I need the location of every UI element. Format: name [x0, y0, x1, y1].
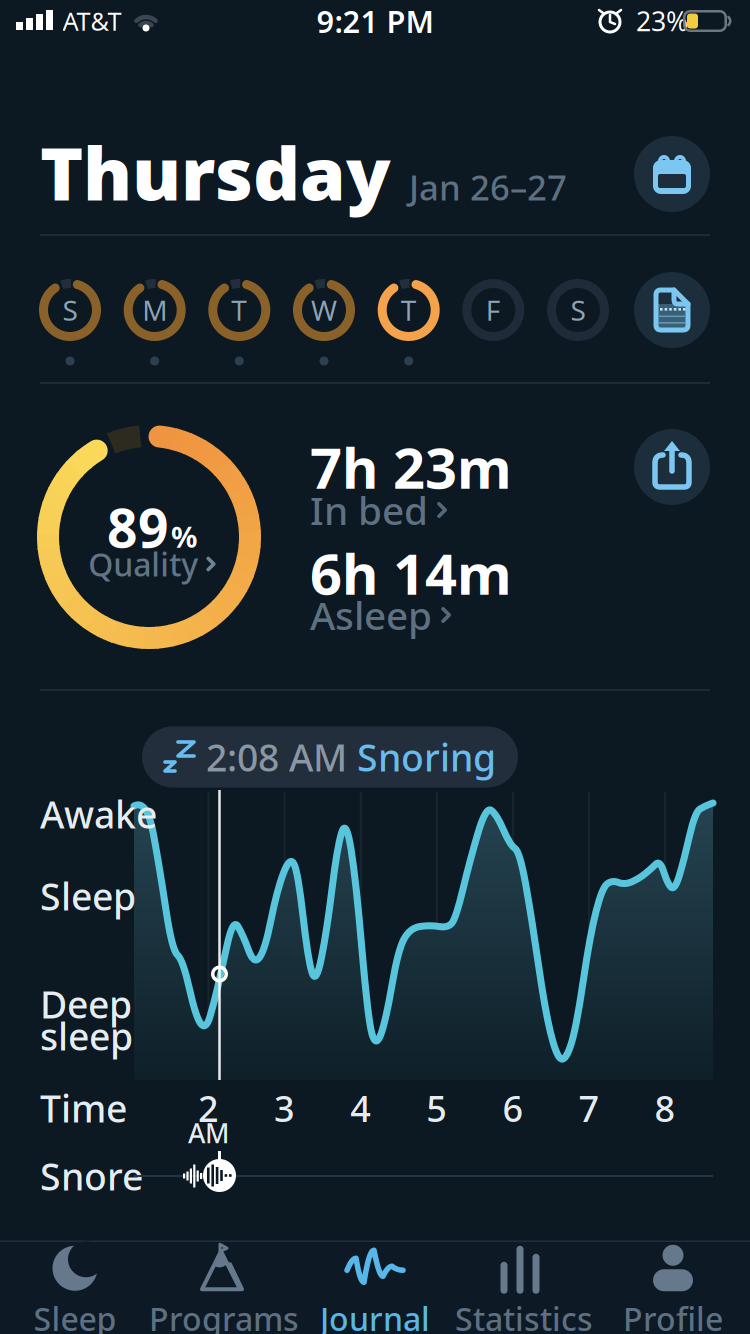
button[interactable]: W [291, 277, 357, 343]
staticText: 9:21 PM [316, 1, 433, 41]
staticText: Programs [149, 1297, 299, 1334]
staticText: S [62, 291, 77, 329]
button[interactable]: 2:08 AM [142, 726, 518, 787]
staticText: 3 [274, 1084, 295, 1132]
staticText: Snoring [357, 732, 496, 782]
button[interactable] [634, 429, 710, 505]
staticText: sleep [40, 1011, 133, 1061]
staticText: 7 [578, 1084, 599, 1132]
staticText: Sleep [33, 1297, 116, 1334]
staticText: W [311, 291, 337, 329]
staticText: 2:08 AM [206, 732, 347, 782]
button[interactable]: 89 [57, 483, 247, 603]
staticText: Awake [40, 789, 157, 839]
staticText: 2 [198, 1084, 219, 1132]
staticText: Sleep [40, 871, 136, 921]
staticText: 8 [655, 1084, 676, 1132]
button[interactable] [203, 1159, 236, 1192]
staticText: S [570, 291, 585, 329]
button[interactable]: M [122, 277, 188, 343]
button[interactable]: Programs [144, 1247, 304, 1334]
staticText: 23% [636, 3, 688, 39]
button[interactable]: S [37, 277, 103, 343]
button[interactable]: F [460, 277, 526, 343]
staticText: Profile [623, 1297, 723, 1334]
staticText: T [401, 291, 417, 329]
staticText: 7h 23m [310, 430, 512, 504]
button[interactable]: T [206, 277, 272, 343]
staticText: 4 [350, 1084, 371, 1132]
button[interactable]: 7h 23m [310, 433, 640, 543]
staticText: Deep [40, 979, 132, 1029]
staticText: M [142, 291, 167, 329]
button[interactable]: S [545, 277, 611, 343]
staticText: Quality [88, 543, 198, 585]
staticText: 89 [107, 492, 169, 562]
button[interactable]: Sleep [0, 1247, 155, 1334]
staticText: Statistics [455, 1297, 593, 1334]
staticText: F [486, 291, 501, 329]
staticText: Time [40, 1083, 127, 1133]
button[interactable]: Profile [593, 1247, 750, 1334]
staticText: 5 [426, 1084, 447, 1132]
button[interactable]: Statistics [444, 1247, 604, 1334]
staticText: Thursday [40, 123, 391, 221]
button[interactable]: Journal [295, 1247, 455, 1334]
staticText: Asleep [310, 589, 432, 641]
staticText: Journal [320, 1297, 430, 1334]
staticText: AT&T [62, 4, 121, 38]
staticText: In bed [310, 484, 428, 536]
staticText: 6h 14m [310, 536, 512, 610]
button[interactable] [634, 272, 710, 348]
staticText: % [171, 517, 197, 556]
staticText: 6 [502, 1084, 523, 1132]
staticText: AM [188, 1115, 229, 1151]
staticText: T [231, 291, 247, 329]
button[interactable] [634, 136, 710, 212]
staticText: Jan 26–27 [409, 164, 567, 210]
button[interactable]: 6h 14m [310, 539, 640, 649]
button[interactable]: T [376, 277, 442, 343]
staticText: Snore [40, 1151, 143, 1201]
